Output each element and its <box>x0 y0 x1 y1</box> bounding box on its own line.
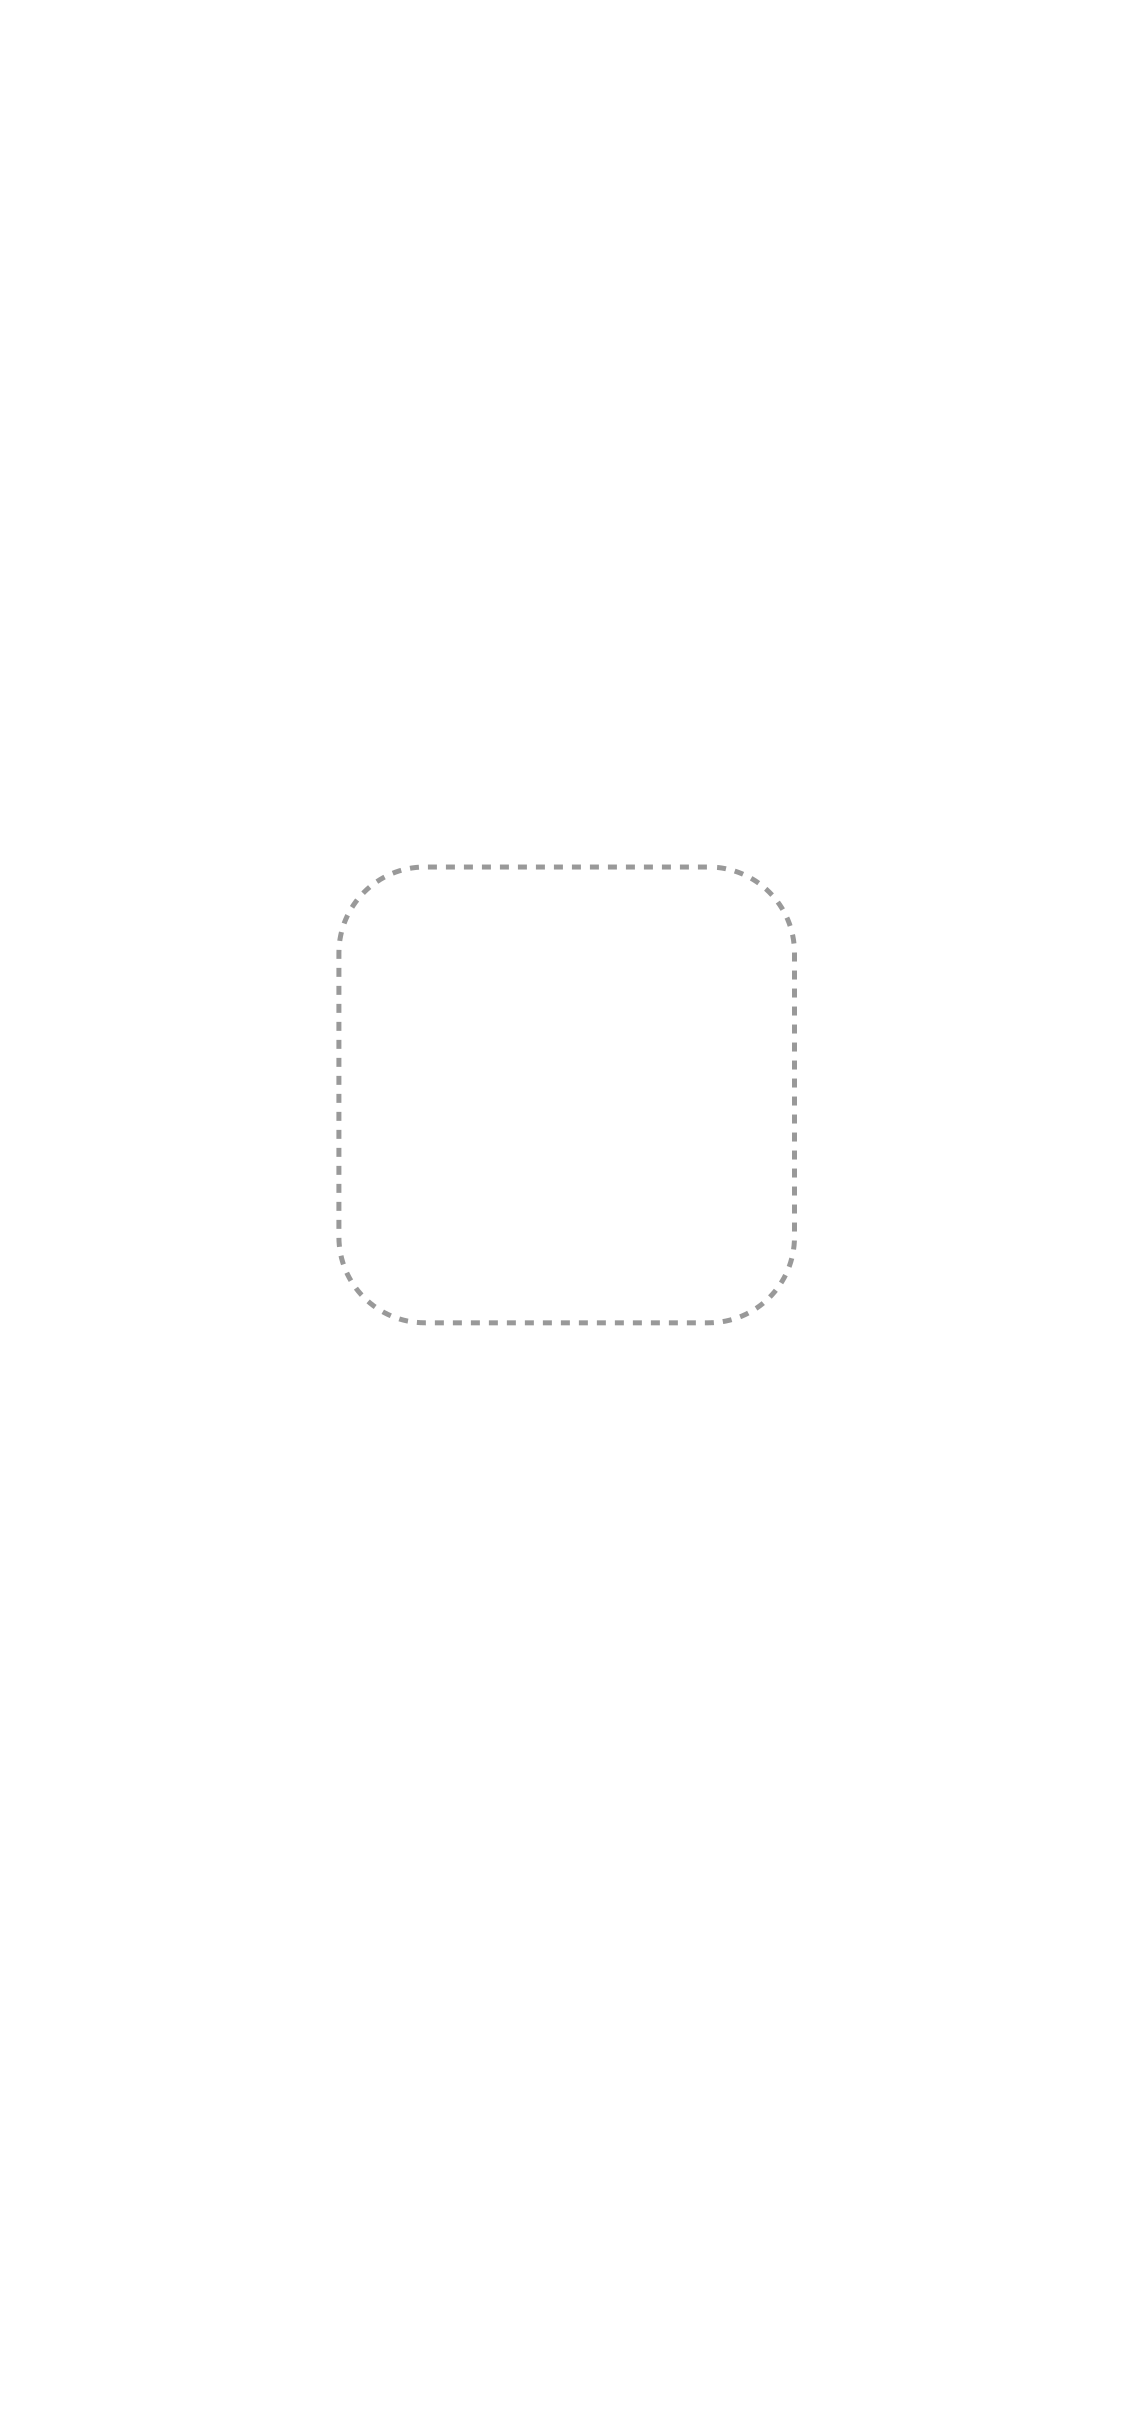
button[interactable]: Add item <box>339 867 794 1323</box>
